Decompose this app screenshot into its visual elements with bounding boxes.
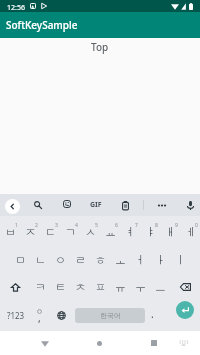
- button[interactable]: Collapse toolbar: [5, 199, 20, 214]
- staticText: 9: [175, 222, 178, 229]
- staticText: ㅛ: [105, 225, 116, 239]
- staticText: 7: [135, 222, 138, 229]
- button[interactable]: Stickers: [58, 196, 76, 214]
- staticText: ,: [38, 311, 41, 325]
- button[interactable]: 한국어: [75, 308, 145, 323]
- staticText: ㅈ: [25, 225, 36, 239]
- button[interactable]: .: [143, 301, 161, 329]
- button[interactable]: ㄹ: [70, 246, 90, 274]
- button[interactable]: Recent apps: [142, 331, 166, 355]
- staticText: ㄹ: [75, 253, 86, 267]
- staticText: ㅓ: [135, 253, 146, 267]
- staticText: ?123: [7, 310, 25, 321]
- button[interactable]: ㅔ: [180, 218, 200, 246]
- staticText: ㄷ: [45, 225, 56, 239]
- staticText: ㅑ: [145, 225, 156, 239]
- staticText: ㅅ: [85, 225, 96, 239]
- staticText: 5: [95, 222, 98, 229]
- staticText: ㅠ: [115, 280, 126, 294]
- button[interactable]: Shift: [0, 273, 30, 301]
- button[interactable]: Backspace: [170, 273, 200, 301]
- button[interactable]: ㅎ: [90, 246, 110, 274]
- button[interactable]: ㅍ: [90, 273, 110, 301]
- staticText: 한국어: [100, 311, 121, 320]
- staticText: ㄴ: [35, 253, 46, 267]
- staticText: ㅍ: [95, 280, 106, 294]
- staticText: ㅔ: [185, 225, 196, 239]
- staticText: ㅌ: [55, 280, 66, 294]
- staticText: ㅁ: [15, 253, 26, 267]
- button[interactable]: ㅣ: [170, 246, 190, 274]
- staticText: ㅋ: [35, 280, 46, 294]
- button[interactable]: Clipboard: [116, 196, 134, 214]
- button[interactable]: Change language: [51, 301, 71, 329]
- button[interactable]: ㅇ: [50, 246, 70, 274]
- button[interactable]: ㅌ: [50, 273, 70, 301]
- button[interactable]: ㅑ: [140, 218, 160, 246]
- staticText: SoftKeySample: [6, 18, 78, 32]
- staticText: ㅎ: [95, 253, 106, 267]
- staticText: ㅡ: [155, 280, 166, 294]
- staticText: 8: [155, 222, 158, 229]
- button[interactable]: Voice input: [181, 196, 199, 214]
- button[interactable]: GIF: [86, 196, 106, 214]
- button[interactable]: ?123: [3, 301, 29, 329]
- staticText: 0: [195, 222, 198, 229]
- staticText: ㄱ: [65, 225, 76, 239]
- button[interactable]: Hide keyboard: [33, 331, 57, 355]
- staticText: GIF: [90, 200, 102, 210]
- button[interactable]: ㅠ: [110, 273, 130, 301]
- button[interactable]: Enter: [176, 301, 194, 319]
- staticText: 1: [15, 222, 18, 229]
- staticText: ㅊ: [75, 280, 86, 294]
- staticText: ㅂ: [5, 225, 16, 239]
- button[interactable]: ㅂ: [0, 218, 20, 246]
- button[interactable]: More options: [153, 196, 171, 214]
- staticText: 4: [75, 222, 78, 229]
- button[interactable]: ㅁ: [10, 246, 30, 274]
- button[interactable]: ㅕ: [120, 218, 140, 246]
- button[interactable]: ㅊ: [70, 273, 90, 301]
- button[interactable]: Home: [87, 331, 111, 355]
- button[interactable]: Search: [29, 196, 47, 214]
- staticText: 3: [55, 222, 58, 229]
- button[interactable]: ㅜ: [130, 273, 150, 301]
- staticText: .: [151, 307, 154, 321]
- button[interactable]: ㅡ: [150, 273, 170, 301]
- staticText: ㅏ: [155, 253, 166, 267]
- button[interactable]: ㄴ: [30, 246, 50, 274]
- staticText: 12:56: [7, 3, 25, 13]
- staticText: Top: [91, 40, 109, 54]
- staticText: 6: [115, 222, 118, 229]
- staticText: ㅣ: [175, 253, 186, 267]
- button[interactable]: ㄷ: [40, 218, 60, 246]
- button[interactable]: ㅛ: [100, 218, 120, 246]
- staticText: ㅜ: [135, 280, 146, 294]
- button[interactable]: ㅏ: [150, 246, 170, 274]
- staticText: 2: [35, 222, 38, 229]
- button[interactable]: ㅋ: [30, 273, 50, 301]
- button[interactable]: ㄱ: [60, 218, 80, 246]
- button[interactable]: ㅗ: [110, 246, 130, 274]
- staticText: ㅕ: [125, 225, 136, 239]
- staticText: ㅇ: [55, 253, 66, 267]
- button[interactable]: ,: [29, 301, 49, 329]
- staticText: ㅗ: [115, 253, 126, 267]
- button[interactable]: ㅓ: [130, 246, 150, 274]
- button[interactable]: ㅈ: [20, 218, 40, 246]
- staticText: ㅐ: [165, 225, 176, 239]
- button[interactable]: Switch keyboard: [174, 331, 192, 355]
- button[interactable]: ㅅ: [80, 218, 100, 246]
- button[interactable]: ㅐ: [160, 218, 180, 246]
